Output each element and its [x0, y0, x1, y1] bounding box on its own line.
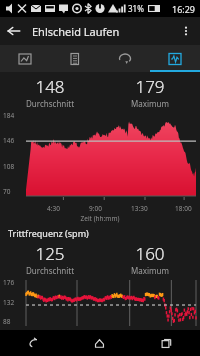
button[interactable]: Home	[66, 330, 133, 356]
button[interactable]: Map	[0, 45, 50, 72]
button[interactable]: Recent apps	[133, 330, 200, 356]
staticText: Durchschnitt	[26, 98, 75, 109]
button[interactable]: Back	[0, 330, 66, 356]
staticText: 146	[3, 136, 15, 145]
button[interactable]: Details	[50, 45, 100, 72]
button[interactable]: Laps	[100, 45, 150, 72]
button[interactable]: More options	[172, 17, 200, 45]
staticText: Durchschnitt	[26, 265, 75, 276]
staticText: Ehlscheid Laufen	[32, 24, 172, 39]
staticText: 16:29	[172, 3, 196, 15]
staticText: 184	[3, 111, 15, 120]
staticText: 9:00	[89, 204, 102, 213]
staticText: 31%	[128, 3, 144, 14]
staticText: 70	[3, 187, 11, 196]
staticText: 13:30	[131, 204, 148, 213]
staticText: Trittfrequenz (spm)	[8, 227, 89, 239]
staticText: 148	[35, 75, 65, 98]
staticText: 4:30	[47, 204, 60, 213]
staticText: 179	[135, 75, 165, 98]
staticText: 176	[3, 278, 15, 287]
staticText: Zeit (hh:mm)	[0, 214, 200, 223]
staticText: 132	[3, 298, 15, 307]
staticText: 108	[3, 162, 15, 171]
staticText: 18:00	[175, 204, 192, 213]
button[interactable]: Back	[0, 17, 28, 45]
button[interactable]: Charts	[150, 45, 200, 72]
staticText: 125	[35, 242, 65, 265]
staticText: 160	[135, 242, 165, 265]
staticText: 88	[3, 317, 11, 326]
staticText: Maximum	[131, 98, 169, 109]
staticText: Maximum	[131, 265, 169, 276]
